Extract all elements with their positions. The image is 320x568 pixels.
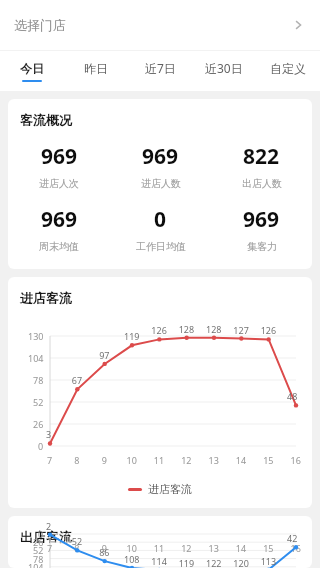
button[interactable]: 近7日 <box>128 51 192 91</box>
staticText: 昨日 <box>84 61 108 76</box>
staticText: 周末均值 <box>39 240 79 253</box>
staticText: 进店客流 <box>20 290 72 306</box>
staticText: 969 <box>41 142 78 171</box>
staticText: 近30日 <box>205 60 243 76</box>
staticText: 进店人数 <box>141 177 181 190</box>
button[interactable]: 今日 <box>0 51 64 91</box>
button[interactable]: 近30日 <box>192 51 256 91</box>
staticText: 822 <box>243 142 280 171</box>
button[interactable]: 昨日 <box>64 51 128 91</box>
staticText: 自定义 <box>270 61 306 76</box>
button[interactable]: 选择门店 <box>0 0 320 50</box>
staticText: 进店客流 <box>148 482 192 496</box>
button[interactable]: 自定义 <box>256 51 320 91</box>
button[interactable]: 822 <box>211 142 312 190</box>
staticText: 工作日均值 <box>136 240 186 253</box>
staticText: 近7日 <box>145 60 176 76</box>
staticText: 出店人数 <box>242 177 282 190</box>
staticText: 969 <box>41 205 78 234</box>
staticText: 0 <box>154 205 167 234</box>
staticText: 客流概况 <box>20 112 72 128</box>
staticText: 出店客流 <box>20 529 72 545</box>
staticText: 选择门店 <box>14 17 66 33</box>
button[interactable]: 969 <box>211 205 312 253</box>
staticText: 集客力 <box>247 240 277 253</box>
button[interactable]: 0 <box>110 205 211 253</box>
button[interactable]: 969 <box>110 142 211 190</box>
staticText: 969 <box>142 142 179 171</box>
staticText: 969 <box>243 205 280 234</box>
button[interactable]: 969 <box>8 142 110 190</box>
staticText: 今日 <box>20 61 44 76</box>
other: Select store <box>290 17 306 33</box>
button[interactable]: 969 <box>8 205 110 253</box>
staticText: 进店人次 <box>39 177 79 190</box>
